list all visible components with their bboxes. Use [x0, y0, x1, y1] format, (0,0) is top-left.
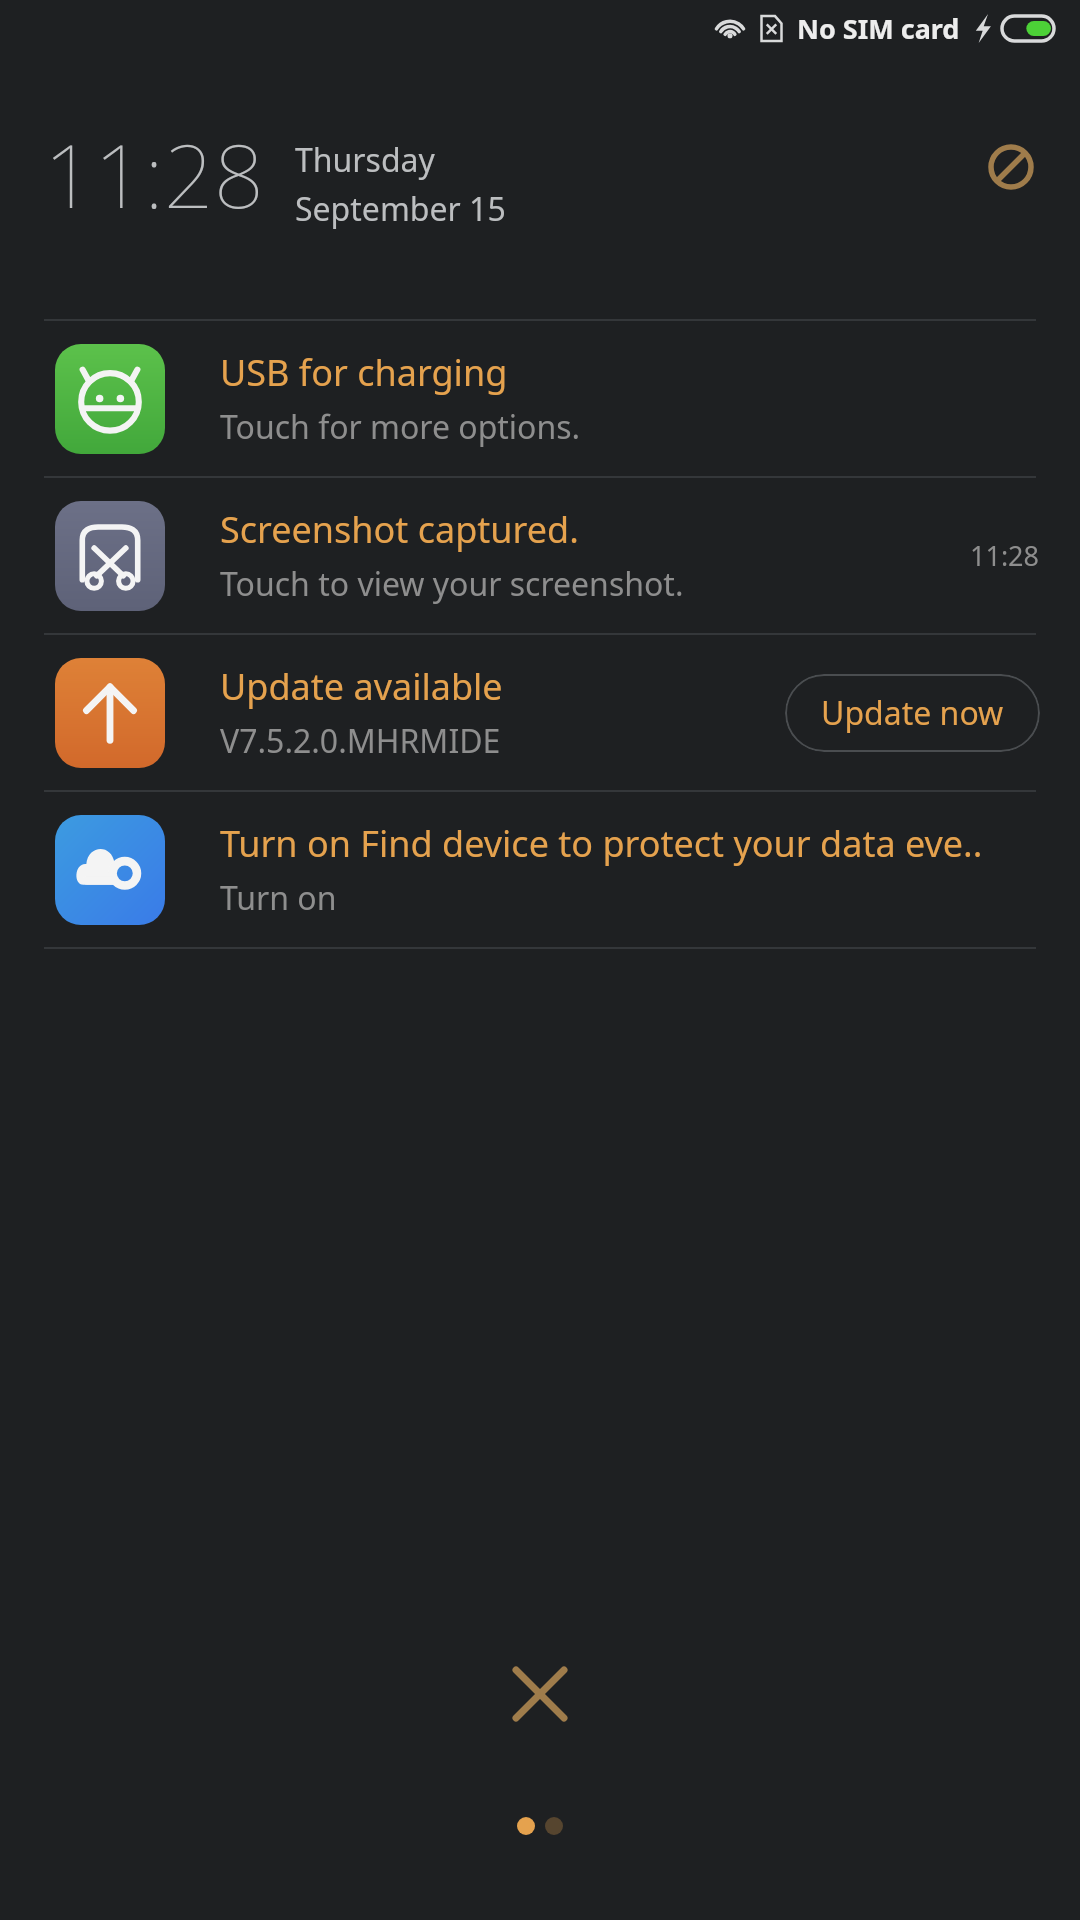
staticText: Update now	[821, 691, 1004, 735]
staticText: Turn on	[220, 876, 337, 920]
other: Battery charging	[1000, 14, 1056, 43]
button[interactable]: USB for charging	[0, 321, 1080, 476]
staticText: 11:28	[970, 537, 1040, 574]
staticText: September 15	[295, 187, 506, 231]
button[interactable]: Update now	[785, 674, 1040, 752]
button[interactable]: Update available	[0, 635, 1080, 790]
button[interactable]: Turn on Find device to protect your data…	[0, 792, 1080, 947]
staticText: Touch to view your screenshot.	[220, 562, 684, 606]
staticText: Turn on Find device to protect your data…	[220, 819, 983, 868]
button[interactable]: Screenshot captured.	[0, 478, 1080, 633]
staticText: USB for charging	[220, 348, 508, 397]
button[interactable]: Do not disturb	[980, 136, 1042, 198]
staticText: Thursday	[295, 138, 435, 182]
staticText: 11:28	[44, 114, 265, 234]
staticText: Update available	[220, 662, 503, 711]
staticText: Screenshot captured.	[220, 505, 579, 554]
button[interactable]: Clear all notifications	[484, 1638, 596, 1750]
other: Wi-Fi	[714, 15, 746, 41]
staticText: V7.5.2.0.MHRMIDE	[220, 719, 501, 763]
staticText: No SIM card	[797, 10, 960, 47]
other: No SIM card	[759, 13, 784, 44]
staticText: Touch for more options.	[220, 405, 581, 449]
